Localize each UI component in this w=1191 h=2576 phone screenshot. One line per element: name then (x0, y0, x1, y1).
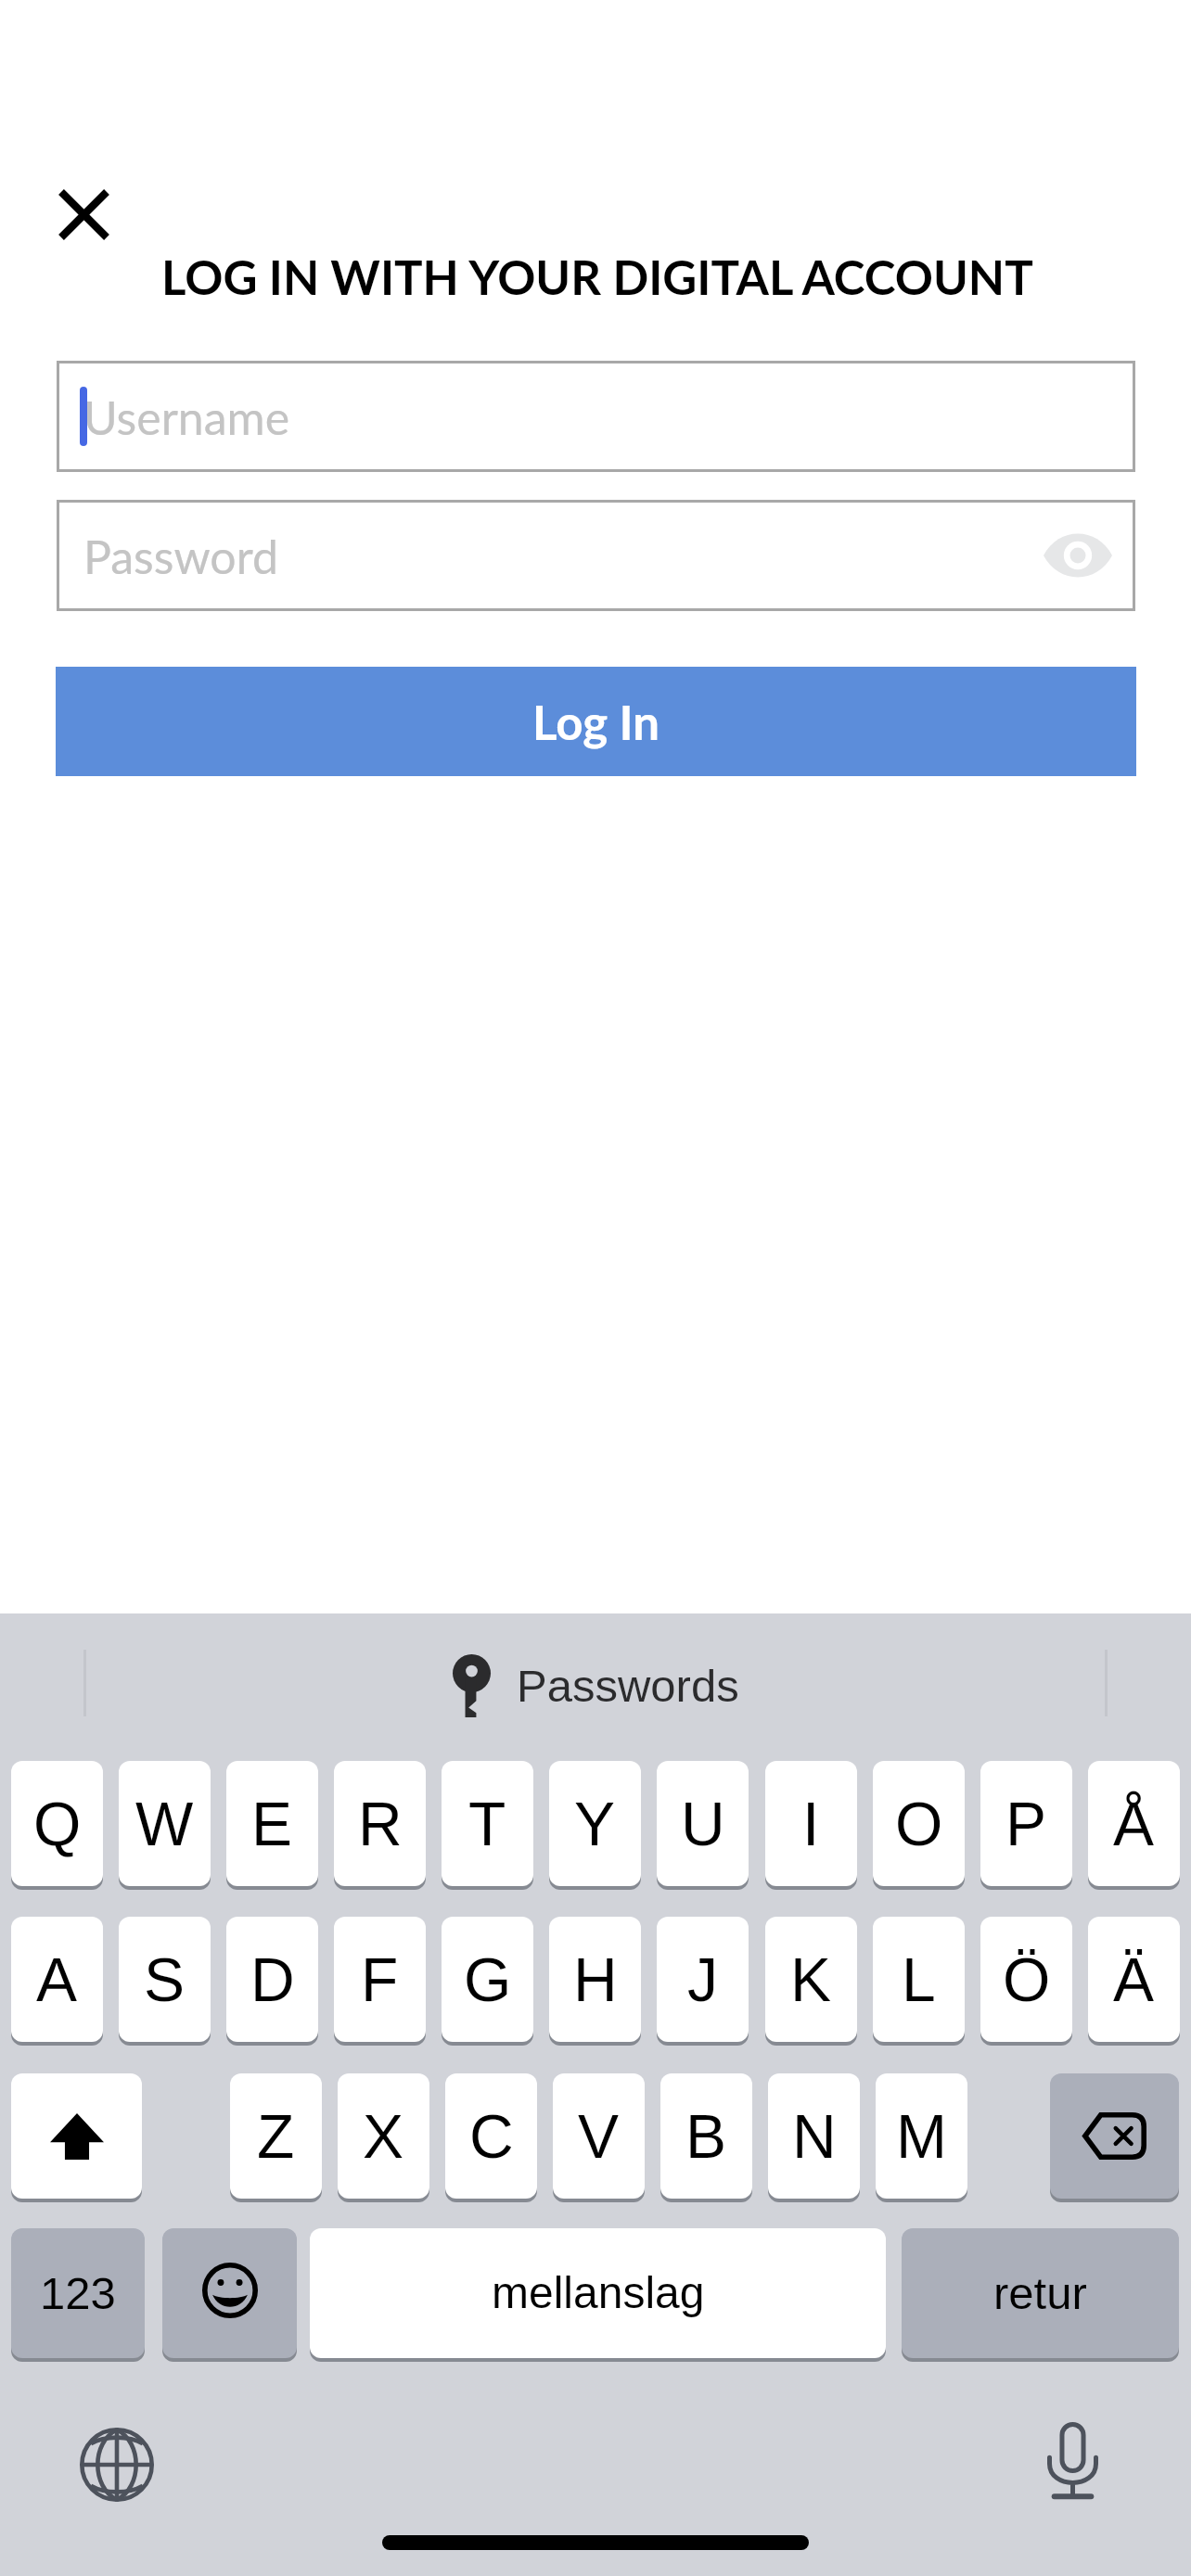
button[interactable]: G (442, 1917, 533, 2042)
staticText: B (685, 2102, 727, 2171)
button[interactable]: Backspace (1050, 2073, 1179, 2199)
staticText: J (687, 1945, 718, 2014)
staticText: C (469, 2102, 514, 2171)
staticText: D (250, 1945, 295, 2014)
button[interactable]: Close (58, 188, 110, 241)
staticText: K (790, 1945, 832, 2014)
staticText: Y (574, 1790, 616, 1858)
staticText: Passwords (517, 1661, 739, 1712)
staticText: X (363, 2102, 404, 2171)
staticText: E (251, 1790, 293, 1858)
staticText: W (135, 1790, 194, 1858)
button[interactable]: C (445, 2073, 537, 2199)
staticText: T (468, 1790, 506, 1858)
staticText: Password (83, 529, 278, 584)
button[interactable]: A (11, 1917, 103, 2042)
staticText: U (681, 1790, 725, 1858)
staticText: G (464, 1945, 512, 2014)
button[interactable]: Ä (1088, 1917, 1180, 2042)
staticText: V (578, 2102, 620, 2171)
staticText: Q (33, 1790, 82, 1858)
staticText: S (144, 1945, 186, 2014)
button[interactable]: B (660, 2073, 752, 2199)
button[interactable]: U (657, 1761, 749, 1886)
button[interactable]: Passwords (453, 1654, 739, 1717)
button[interactable]: mellanslag (310, 2228, 886, 2358)
button[interactable]: P (980, 1761, 1072, 1886)
button[interactable]: H (549, 1917, 641, 2042)
button[interactable]: Username (57, 361, 1135, 472)
button[interactable]: X (338, 2073, 429, 2199)
button[interactable]: Y (549, 1761, 641, 1886)
staticText: Ä (1113, 1945, 1155, 2014)
staticText: P (1005, 1790, 1047, 1858)
button[interactable]: Show password (1035, 513, 1121, 598)
button[interactable]: S (119, 1917, 211, 2042)
staticText: M (896, 2102, 947, 2171)
staticText: N (792, 2102, 837, 2171)
button[interactable]: retur (902, 2228, 1179, 2358)
staticText: O (895, 1790, 943, 1858)
button[interactable]: O (873, 1761, 965, 1886)
button[interactable]: I (765, 1761, 857, 1886)
button[interactable]: J (657, 1917, 749, 2042)
staticText: F (361, 1945, 399, 2014)
button[interactable]: L (873, 1917, 965, 2042)
button[interactable]: R (334, 1761, 426, 1886)
staticText: Username (83, 389, 290, 445)
button[interactable]: K (765, 1917, 857, 2042)
button[interactable]: Ö (980, 1917, 1072, 2042)
button[interactable]: E (226, 1761, 318, 1886)
button[interactable]: Emoji (162, 2228, 297, 2358)
button[interactable]: F (334, 1917, 426, 2042)
staticText: L (902, 1945, 936, 2014)
button[interactable]: Change keyboard (80, 2428, 154, 2502)
button[interactable]: N (768, 2073, 860, 2199)
staticText: Log In (532, 694, 660, 750)
staticText: I (802, 1790, 820, 1858)
button[interactable]: Z (230, 2073, 322, 2199)
staticText: 123 (40, 2268, 116, 2319)
button[interactable]: Shift (11, 2073, 142, 2199)
button[interactable]: Q (11, 1761, 103, 1886)
staticText: Z (257, 2102, 295, 2171)
staticText: A (36, 1945, 78, 2014)
staticText: mellanslag (492, 2268, 705, 2318)
button[interactable]: 123 (11, 2228, 145, 2358)
button[interactable]: T (442, 1761, 533, 1886)
staticText: retur (993, 2268, 1087, 2319)
button[interactable]: V (553, 2073, 645, 2199)
staticText: Å (1113, 1790, 1155, 1858)
button[interactable]: Å (1088, 1761, 1180, 1886)
button[interactable]: D (226, 1917, 318, 2042)
staticText: R (358, 1790, 403, 1858)
staticText: LOG IN WITH YOUR DIGITAL ACCOUNT (161, 249, 1033, 305)
button[interactable]: Log In (56, 667, 1136, 776)
button[interactable]: W (119, 1761, 211, 1886)
button[interactable]: Dictation (1047, 2422, 1098, 2500)
button[interactable]: Password (57, 500, 1135, 611)
staticText: Ö (1003, 1945, 1051, 2014)
staticText: H (573, 1945, 618, 2014)
button[interactable]: M (876, 2073, 967, 2199)
